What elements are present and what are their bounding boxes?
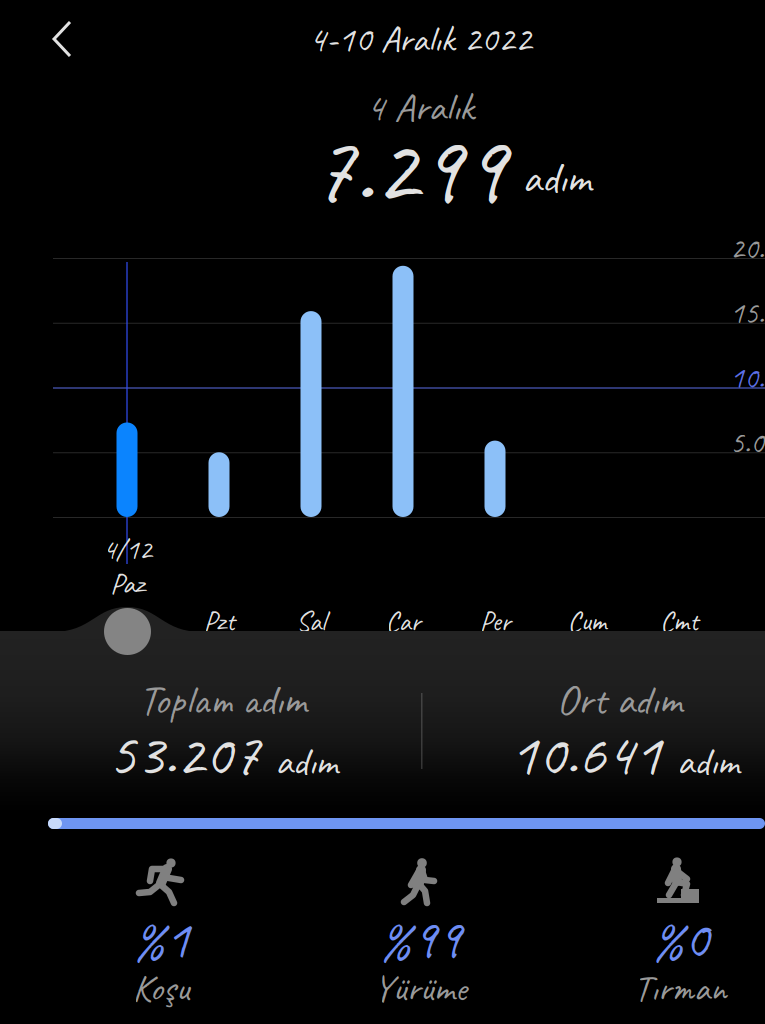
staticText: 15.0	[730, 293, 765, 332]
staticText: Yürüme	[373, 964, 466, 1011]
staticText: Çar	[385, 603, 420, 639]
staticText: 20.0	[730, 229, 765, 267]
staticText: Cum	[567, 603, 606, 639]
button[interactable]: %0	[560, 857, 765, 1024]
staticText: 53.207	[108, 715, 260, 793]
staticText: %1	[132, 905, 190, 973]
staticText: 10.641	[509, 715, 661, 793]
staticText: 4 Aralık	[366, 82, 474, 132]
staticText: 4/12	[102, 530, 151, 567]
staticText: Per	[479, 603, 510, 639]
staticText: 5.0	[730, 423, 764, 461]
staticText: Ort adım	[556, 674, 681, 726]
staticText: adım	[522, 150, 591, 206]
staticText: %0	[651, 905, 709, 973]
staticText: 7.299	[310, 108, 505, 230]
staticText: Paz	[110, 564, 144, 601]
staticText: Sal	[296, 603, 326, 639]
staticText: Koşu	[132, 964, 189, 1011]
staticText: Tırman	[633, 964, 726, 1011]
button[interactable]: Geri	[40, 12, 86, 66]
button[interactable]: %99	[300, 857, 540, 1024]
staticText: Toplam adım	[139, 674, 306, 726]
staticText: %99	[378, 905, 461, 973]
staticText: adım	[275, 736, 337, 786]
staticText: Cmt	[660, 603, 698, 639]
staticText: 10.0	[730, 358, 765, 397]
staticText: adım	[676, 736, 738, 786]
button[interactable]: %1	[41, 857, 281, 1024]
staticText: Pzt	[203, 603, 234, 639]
staticText: 4-10 Aralık 2022	[308, 15, 531, 62]
